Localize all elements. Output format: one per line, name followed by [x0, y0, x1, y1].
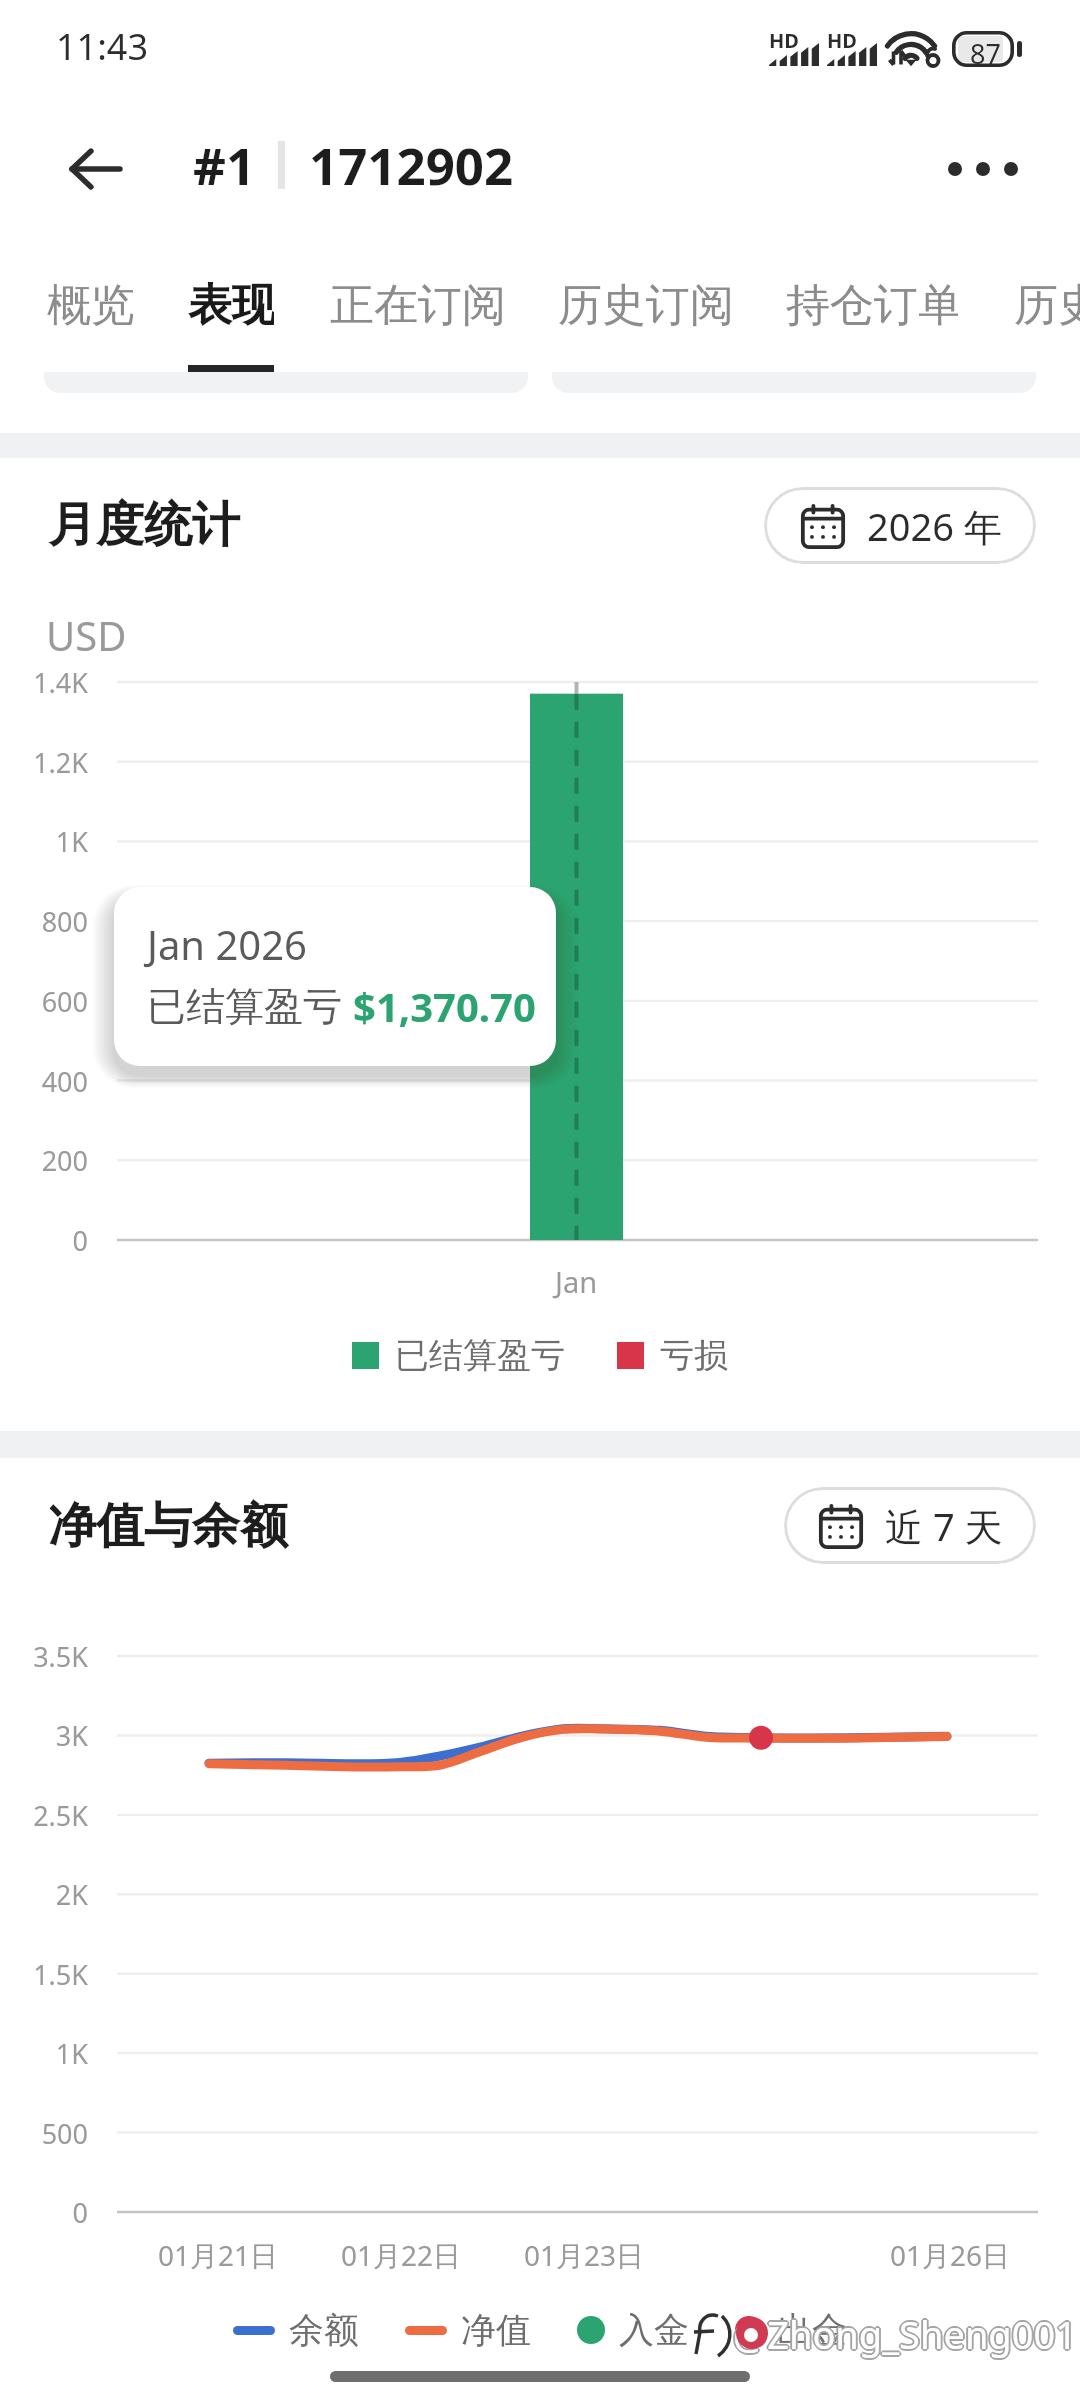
staticText: 0 — [0, 1222, 88, 1259]
staticText: 入金 — [619, 2308, 689, 2352]
button[interactable]: 出金 — [735, 2308, 847, 2352]
staticText: 1712902 — [309, 130, 514, 199]
staticText: 正在订阅 — [330, 278, 502, 333]
button[interactable]: 概览 — [47, 278, 133, 383]
staticText: 余额 — [289, 2308, 359, 2352]
staticText: 已结算盈亏 — [395, 1334, 565, 1377]
staticText: 11:43 — [56, 22, 149, 71]
staticText: 概览 — [47, 278, 133, 333]
staticText: 2026 年 — [867, 500, 1002, 552]
staticText: 3.5K — [0, 1638, 88, 1675]
button[interactable]: 入金 — [577, 2308, 689, 2352]
button[interactable]: 历史订阅 — [558, 278, 730, 383]
staticText: @Zhong_Sheng001 — [734, 2309, 1078, 2361]
staticText: 历史 — [1014, 278, 1080, 333]
button[interactable]: 已结算盈亏 — [352, 1334, 565, 1377]
staticText: 持仓订单 — [786, 278, 958, 333]
staticText: 表现 — [188, 278, 274, 333]
button[interactable]: More options — [930, 131, 1036, 207]
button[interactable]: 余额 — [233, 2308, 359, 2352]
staticText: @Zhong_Sheng001 — [733, 2306, 1077, 2358]
staticText: 已结算盈亏 — [147, 982, 342, 1031]
staticText: 净值与余额 — [48, 1496, 288, 1556]
staticText: 近 7 天 — [885, 1500, 1003, 1552]
staticText: @Zhong_Sheng001 — [733, 2308, 1077, 2360]
staticText: 01月23日 — [524, 2236, 645, 2274]
staticText: 1.5K — [0, 1956, 88, 1993]
staticText: 亏损 — [660, 1334, 728, 1377]
staticText: @Zhong_Sheng001 — [734, 2307, 1078, 2359]
staticText: $1,370.70 — [353, 979, 536, 1033]
staticText: 01月22日 — [341, 2236, 462, 2274]
staticText: 2K — [0, 1876, 88, 1913]
staticText: 200 — [0, 1142, 88, 1179]
button[interactable]: 亏损 — [617, 1334, 728, 1377]
staticText: 800 — [0, 903, 88, 940]
staticText: @Zhong_Sheng001 — [732, 2309, 1076, 2361]
staticText: 1K — [0, 823, 88, 860]
staticText: 500 — [0, 2115, 88, 2152]
staticText: 01月21日 — [158, 2236, 279, 2274]
staticText: USD — [46, 608, 127, 662]
staticText: HD — [769, 27, 799, 54]
staticText: 3K — [0, 1717, 88, 1754]
staticText: @Zhong_Sheng001 — [733, 2310, 1077, 2362]
button[interactable]: 近 7 天 — [784, 1487, 1036, 1564]
button[interactable]: 历史 — [1014, 278, 1080, 383]
staticText: 600 — [0, 983, 88, 1020]
button[interactable]: 正在订阅 — [330, 278, 502, 383]
staticText: @Zhong_Sheng001 — [735, 2308, 1079, 2360]
staticText: 1.2K — [0, 744, 88, 781]
staticText: 87 — [970, 35, 1001, 72]
staticText: @Zhong_Sheng001 — [731, 2308, 1075, 2360]
button[interactable]: 2026 年 — [764, 487, 1036, 564]
staticText: #1 — [193, 130, 256, 199]
staticText: 400 — [0, 1063, 88, 1100]
staticText: 出金 — [777, 2308, 847, 2352]
button[interactable]: Back — [54, 130, 138, 208]
staticText: 月度统计 — [48, 495, 240, 555]
button[interactable]: 表现 — [188, 278, 274, 383]
staticText: Jan 2026 — [147, 917, 307, 971]
button[interactable]: 持仓订单 — [786, 278, 958, 383]
staticText: 1.4K — [0, 664, 88, 701]
button[interactable]: 净值 — [405, 2308, 531, 2352]
staticText: 历史订阅 — [558, 278, 730, 333]
staticText: Jan — [555, 1262, 598, 1301]
staticText: 净值 — [461, 2308, 531, 2352]
staticText: 1K — [0, 2035, 88, 2072]
staticText: 01月26日 — [890, 2236, 1011, 2274]
staticText: 2.5K — [0, 1797, 88, 1834]
staticText: @Zhong_Sheng001 — [732, 2307, 1076, 2359]
staticText: 0 — [0, 2194, 88, 2231]
staticText: HD — [827, 27, 857, 54]
